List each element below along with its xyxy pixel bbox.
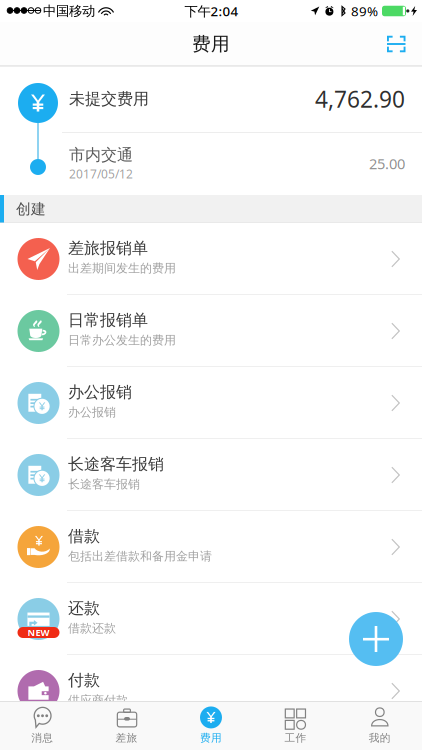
button[interactable]: 工作 (253, 701, 338, 750)
staticText: 供应商付款 (68, 693, 128, 708)
staticText: 日常办公发生的费用 (68, 333, 176, 348)
button[interactable]: 费用 (169, 701, 253, 750)
staticText: 差旅 (116, 731, 138, 744)
staticText: 办公报销 (68, 405, 116, 420)
staticText: 下午2:04 (184, 2, 238, 20)
staticText: 借款还款 (68, 621, 116, 636)
staticText: 日常报销单 (68, 310, 148, 330)
staticText: 市内交通 (69, 145, 133, 165)
staticText: 费用 (192, 32, 230, 55)
staticText: 2017/05/12 (69, 166, 133, 182)
button[interactable]: 办公报销 (0, 367, 422, 439)
staticText: 付款 (68, 670, 100, 690)
staticText: 长途客车报销 (68, 477, 140, 492)
button[interactable]: 我的 (338, 701, 422, 750)
button[interactable]: Add (349, 612, 403, 666)
button[interactable]: Scan (373, 22, 422, 66)
staticText: 未提交费用 (69, 89, 149, 109)
button[interactable]: 长途客车报销 (0, 439, 422, 511)
staticText: 工作 (284, 731, 306, 744)
staticText: 费用 (200, 731, 222, 744)
staticText: 25.00 (369, 154, 405, 173)
staticText: 差旅报销单 (68, 238, 148, 258)
staticText: 4,762.90 (315, 84, 405, 114)
button[interactable]: 日常报销单 (0, 295, 422, 367)
staticText: 中国移动 (43, 3, 95, 19)
button[interactable]: 消息 (0, 701, 84, 750)
staticText: 89% (351, 2, 378, 20)
staticText: 我的 (369, 731, 391, 744)
button[interactable]: 差旅报销单 (0, 223, 422, 295)
button[interactable]: 差旅 (84, 701, 169, 750)
button[interactable]: NEW (0, 583, 422, 655)
button[interactable]: 借款 (0, 511, 422, 583)
staticText: 包括出差借款和备用金申请 (68, 549, 212, 564)
staticText: 借款 (68, 526, 100, 546)
staticText: 消息 (31, 731, 53, 744)
staticText: NEW (27, 626, 49, 639)
staticText: 还款 (68, 598, 100, 618)
staticText: 办公报销 (68, 382, 132, 402)
staticText: 出差期间发生的费用 (68, 261, 176, 276)
staticText: 长途客车报销 (68, 454, 164, 474)
button[interactable]: 付款 (0, 655, 422, 727)
staticText: 创建 (16, 200, 46, 218)
